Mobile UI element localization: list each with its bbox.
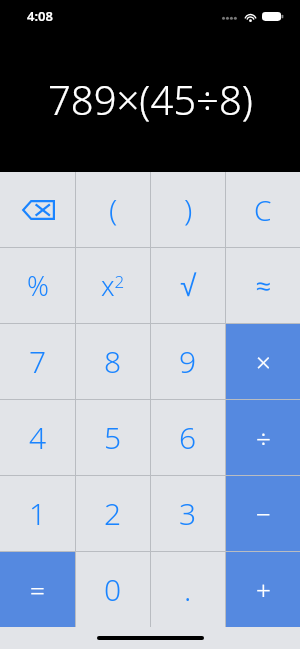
staticText: % (27, 267, 49, 304)
button[interactable]: Seven (0, 324, 75, 399)
staticText: × (256, 344, 271, 379)
staticText: = (30, 572, 45, 607)
button[interactable]: Two (76, 476, 150, 551)
button[interactable]: Square root (151, 248, 225, 323)
staticText: C (254, 191, 272, 229)
button[interactable]: Close parenthesis (151, 172, 225, 247)
button[interactable]: Eight (76, 324, 150, 399)
button[interactable]: Backspace (0, 172, 75, 247)
staticText: ) (184, 189, 193, 230)
button[interactable]: Equals (0, 552, 75, 627)
button[interactable]: One (0, 476, 75, 551)
button[interactable]: x squared (76, 248, 150, 323)
button[interactable]: Multiply (226, 324, 300, 399)
button[interactable]: Five (76, 400, 150, 475)
staticText: + (256, 572, 271, 607)
button[interactable]: Divide (226, 400, 300, 475)
button[interactable]: Nine (151, 324, 225, 399)
staticText: 8 (104, 341, 122, 382)
staticText: 7 (29, 341, 47, 382)
button[interactable]: Open parenthesis (76, 172, 150, 247)
button[interactable]: Plus (226, 552, 300, 627)
staticText: 3 (179, 493, 197, 534)
staticText: ≈ (256, 271, 271, 300)
staticText: ( (109, 189, 118, 230)
staticText: 4 (29, 417, 47, 458)
staticText: 6 (179, 417, 197, 458)
staticText: 4:08 (27, 7, 53, 25)
button[interactable]: Minus (226, 476, 300, 551)
staticText: . (184, 569, 192, 610)
staticText: 2 (104, 493, 122, 534)
button[interactable]: Percent (0, 248, 75, 323)
button[interactable]: Approximately equal (226, 248, 300, 323)
staticText: 5 (104, 417, 122, 458)
staticText: 9 (179, 341, 197, 382)
staticText: 1 (29, 493, 47, 534)
staticText: 789×(45÷8) (48, 72, 253, 126)
button[interactable]: Six (151, 400, 225, 475)
button[interactable]: Three (151, 476, 225, 551)
staticText: − (256, 496, 271, 531)
button[interactable]: Clear (226, 172, 300, 247)
staticText: x2 (101, 267, 125, 304)
staticText: 0 (104, 569, 122, 610)
staticText: √ (180, 269, 197, 303)
staticText: ÷ (256, 420, 271, 455)
button[interactable]: Decimal point (151, 552, 225, 627)
button[interactable]: Four (0, 400, 75, 475)
button[interactable]: Zero (76, 552, 150, 627)
